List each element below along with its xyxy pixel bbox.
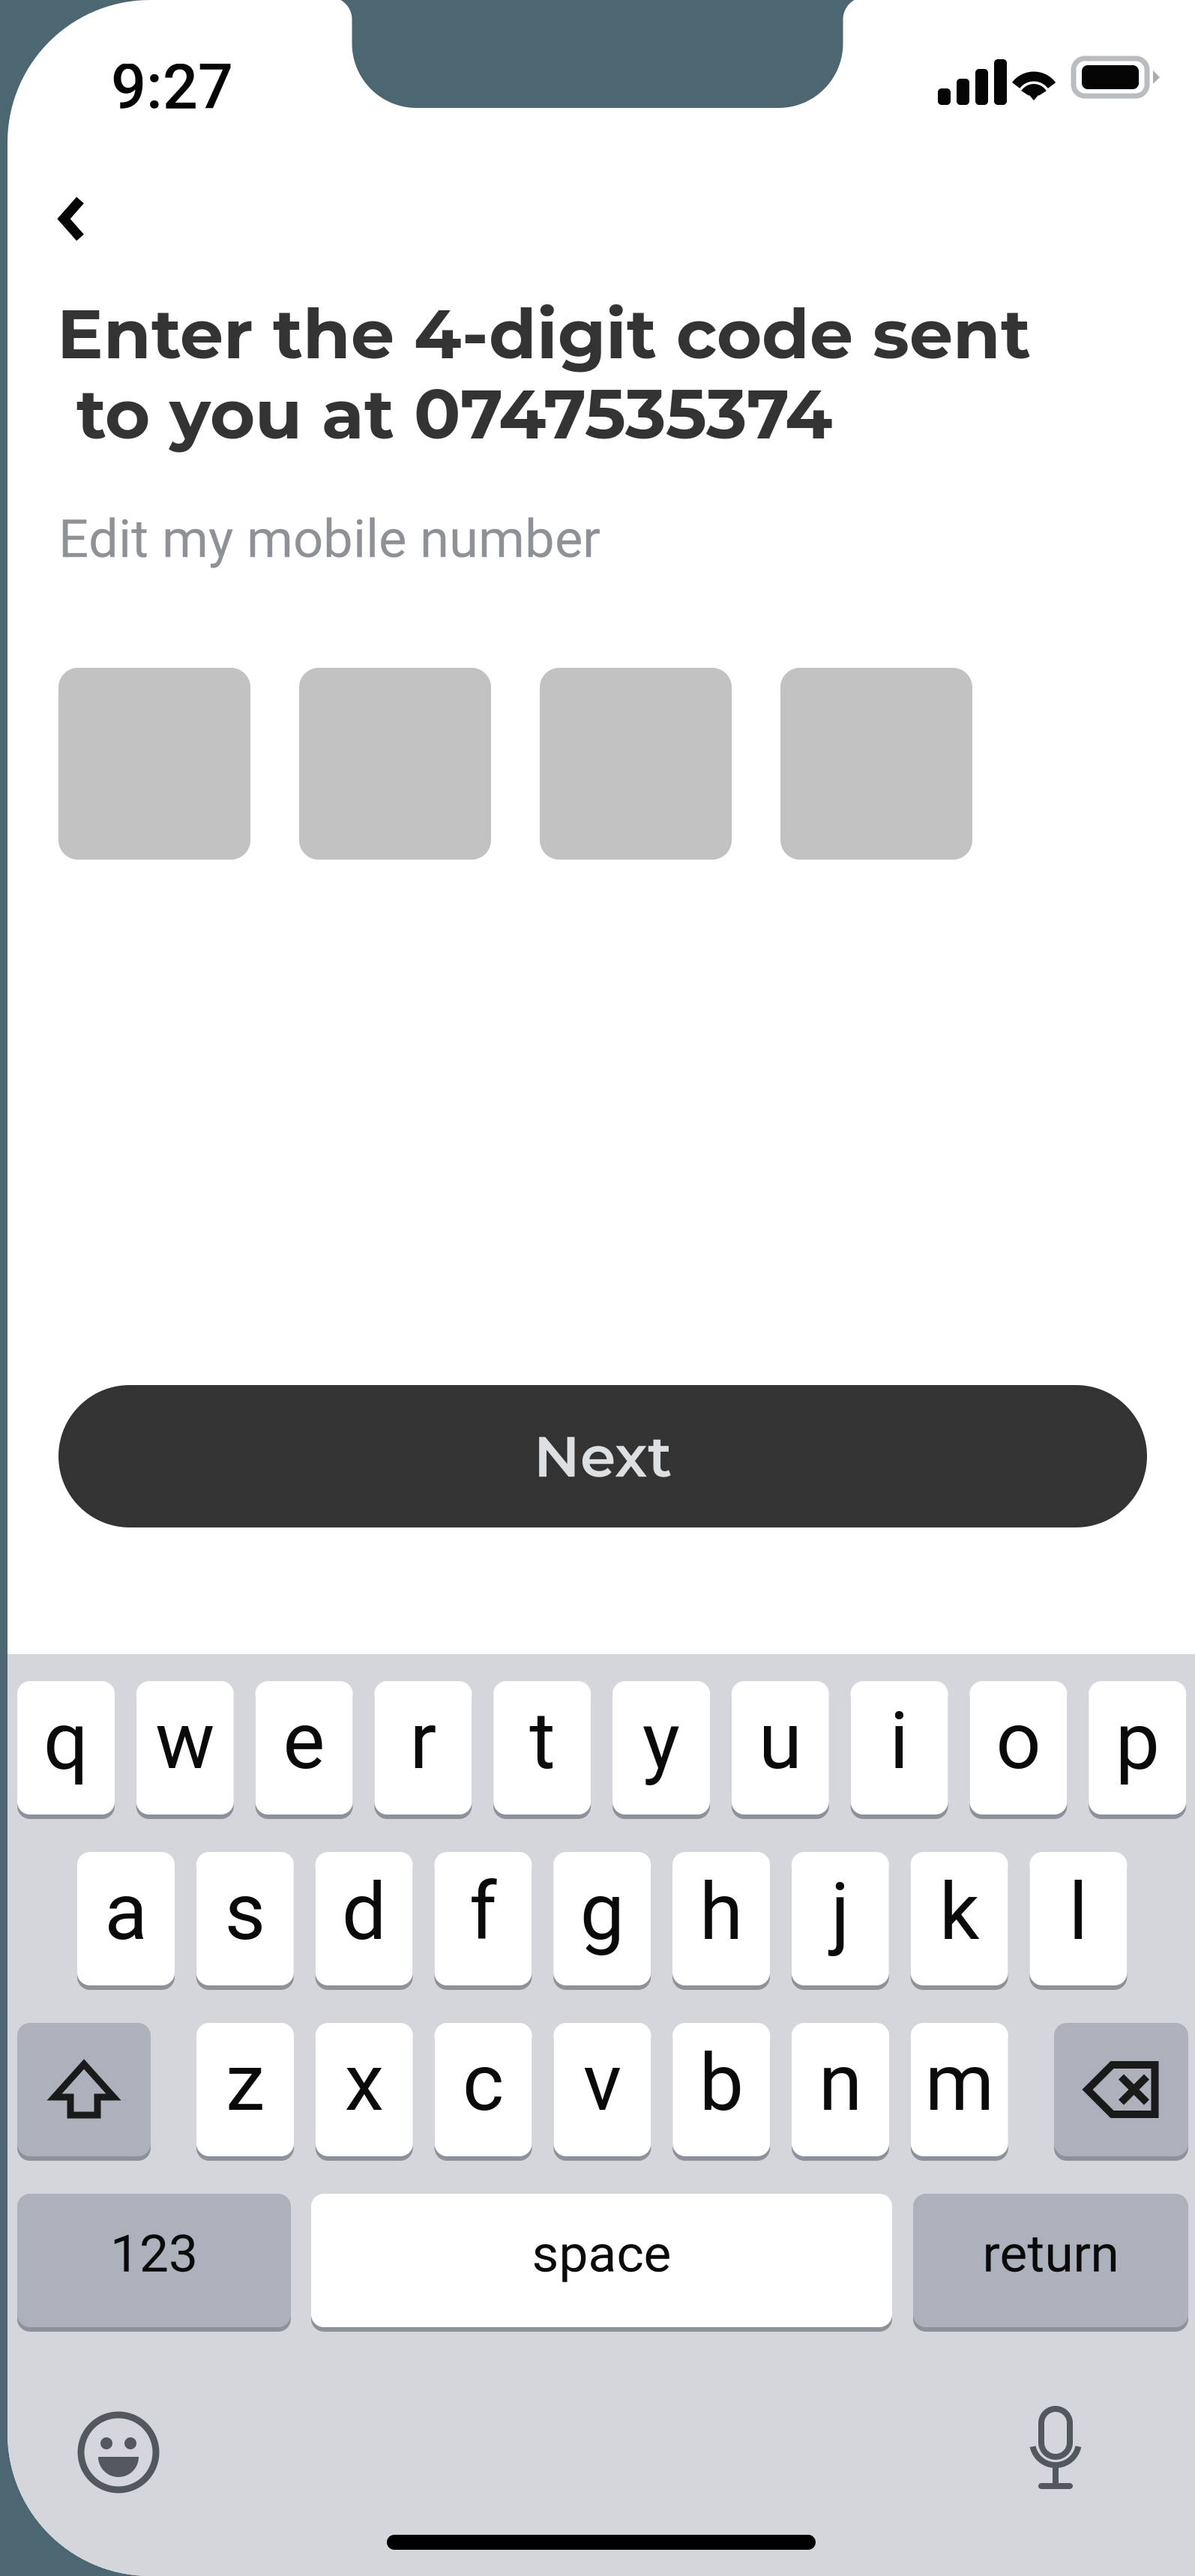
staticText: return: [982, 2223, 1119, 2284]
button[interactable]: p: [1089, 1681, 1186, 1819]
button[interactable]: j: [792, 1852, 889, 1990]
staticText: 123: [110, 2223, 198, 2284]
staticText: Edit my mobile number: [58, 508, 600, 570]
staticText: k: [939, 1866, 979, 1958]
staticText: b: [699, 2037, 743, 2129]
button[interactable]: space: [311, 2194, 892, 2332]
button[interactable]: Shift: [17, 2023, 151, 2161]
button[interactable]: q: [17, 1681, 115, 1819]
staticText: t: [529, 1695, 555, 1787]
staticText: e: [283, 1695, 325, 1787]
button[interactable]: Next: [58, 1385, 1147, 1527]
button[interactable]: Back: [25, 171, 122, 268]
staticText: y: [642, 1695, 680, 1787]
staticText: f: [469, 1866, 497, 1958]
button[interactable]: h: [672, 1852, 770, 1990]
staticText: d: [342, 1866, 386, 1958]
staticText: s: [225, 1866, 265, 1958]
button[interactable]: y: [612, 1681, 710, 1819]
button[interactable]: Emoji: [81, 2415, 156, 2490]
staticText: u: [759, 1695, 802, 1787]
button[interactable]: 123: [17, 2194, 291, 2332]
staticText: w: [155, 1695, 215, 1787]
button[interactable]: u: [732, 1681, 829, 1819]
button[interactable]: e: [255, 1681, 353, 1819]
button[interactable]: i: [851, 1681, 948, 1819]
button[interactable]: o: [970, 1681, 1067, 1819]
staticText: q: [43, 1695, 88, 1787]
staticText: g: [580, 1866, 624, 1958]
staticText: Next: [534, 1422, 672, 1491]
staticText: to you at 0747535374: [57, 372, 832, 456]
button[interactable]: k: [911, 1852, 1008, 1990]
button[interactable]: r: [374, 1681, 472, 1819]
button[interactable]: a: [77, 1852, 175, 1990]
staticText: a: [105, 1866, 147, 1958]
staticText: r: [410, 1695, 437, 1787]
staticText: c: [463, 2037, 504, 2129]
button[interactable]: f: [434, 1852, 532, 1990]
staticText: 9:27: [111, 51, 233, 124]
button[interactable]: t: [493, 1681, 591, 1819]
button[interactable]: Edit my mobile number: [58, 507, 628, 571]
staticText: v: [583, 2037, 621, 2129]
staticText: x: [345, 2037, 384, 2129]
button[interactable]: v: [554, 2023, 651, 2161]
staticText: i: [890, 1695, 909, 1787]
button[interactable]: s: [196, 1852, 294, 1990]
staticText: space: [532, 2223, 671, 2284]
staticText: h: [699, 1866, 743, 1958]
button[interactable]: l: [1030, 1852, 1127, 1990]
button[interactable]: n: [792, 2023, 889, 2161]
staticText: m: [925, 2037, 994, 2129]
button[interactable]: c: [435, 2023, 532, 2161]
button[interactable]: d: [315, 1852, 413, 1990]
button[interactable]: m: [911, 2023, 1008, 2161]
button[interactable]: w: [136, 1681, 234, 1819]
button[interactable]: return: [913, 2194, 1188, 2332]
staticText: n: [819, 2037, 862, 2129]
button[interactable]: z: [196, 2023, 294, 2161]
staticText: z: [226, 2037, 265, 2129]
staticText: o: [996, 1695, 1041, 1787]
button[interactable]: b: [673, 2023, 770, 2161]
staticText: j: [831, 1866, 850, 1958]
button[interactable]: Dictation: [1026, 2409, 1086, 2491]
button[interactable]: g: [553, 1852, 651, 1990]
staticText: Enter the 4-digit code sent: [57, 292, 1031, 376]
button[interactable]: x: [315, 2023, 413, 2161]
staticText: p: [1115, 1695, 1160, 1787]
button[interactable]: Delete: [1054, 2023, 1188, 2161]
staticText: l: [1069, 1866, 1088, 1958]
